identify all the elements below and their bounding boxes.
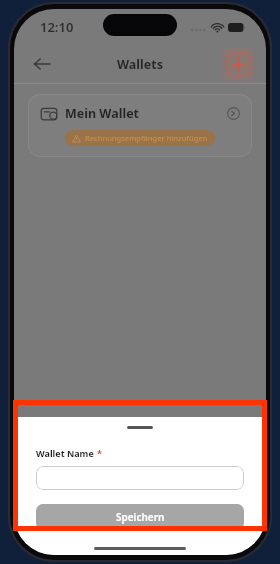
- staticText: Speichern: [116, 510, 165, 524]
- staticText: 12:10: [40, 18, 74, 36]
- staticText: Wallet Name: [36, 447, 94, 459]
- staticText: *: [97, 447, 102, 459]
- button[interactable]: Mein Wallet: [28, 94, 252, 157]
- staticText: Rechnungsempfänger hinzufügen: [85, 133, 208, 143]
- button[interactable]: Back: [26, 48, 58, 80]
- button[interactable]: Speichern: [36, 504, 244, 530]
- staticText: Mein Wallet: [65, 105, 140, 122]
- staticText: Wallets: [117, 56, 163, 73]
- button[interactable]: Add wallet: [224, 49, 254, 79]
- button[interactable]: Rechnungsempfänger hinzufügen: [65, 130, 215, 146]
- button[interactable]: [36, 466, 244, 490]
